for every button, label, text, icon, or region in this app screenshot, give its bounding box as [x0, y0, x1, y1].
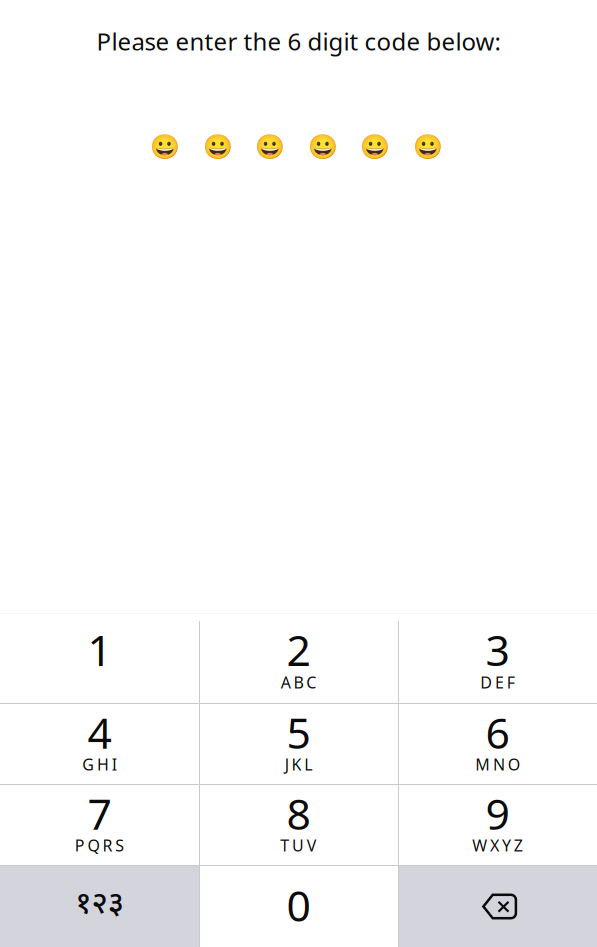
button[interactable]: १२३	[0, 866, 199, 947]
staticText: 😀	[308, 133, 338, 161]
button[interactable]: 1	[0, 614, 199, 703]
button[interactable]: 5	[199, 704, 398, 784]
staticText: 😀	[413, 133, 443, 161]
button[interactable]: 0	[199, 866, 398, 947]
staticText: 😀	[255, 133, 285, 161]
staticText: Please enter the 6 digit code below:	[96, 25, 500, 57]
staticText: 😀	[203, 133, 233, 161]
staticText: 2	[286, 621, 310, 678]
staticText: 5	[286, 704, 310, 761]
staticText: TUV	[280, 835, 317, 856]
staticText: 7	[87, 785, 111, 842]
staticText: 1	[87, 621, 111, 678]
button[interactable]: 2	[199, 614, 398, 703]
button[interactable]: 7	[0, 785, 199, 865]
staticText: PQRS	[75, 835, 124, 856]
staticText: DEF	[480, 672, 515, 693]
staticText: JKL	[285, 754, 312, 775]
staticText: 8	[286, 785, 310, 842]
staticText: MNO	[475, 754, 520, 775]
staticText: १२३	[75, 881, 124, 921]
button[interactable]: 3	[398, 614, 597, 703]
staticText: 9	[485, 785, 509, 842]
staticText: 😀	[360, 133, 390, 161]
staticText: ABC	[281, 672, 316, 693]
staticText: GHI	[82, 754, 117, 775]
button[interactable]: 4	[0, 704, 199, 784]
button[interactable]: 9	[398, 785, 597, 865]
staticText: 6	[485, 704, 509, 761]
staticText: 4	[87, 704, 111, 761]
button[interactable]: 6	[398, 704, 597, 784]
button[interactable]: Delete	[398, 866, 597, 947]
staticText: WXYZ	[472, 835, 523, 856]
staticText: 0	[286, 877, 310, 933]
button[interactable]: 8	[199, 785, 398, 865]
staticText: 3	[485, 621, 509, 678]
staticText: 😀	[150, 133, 180, 161]
